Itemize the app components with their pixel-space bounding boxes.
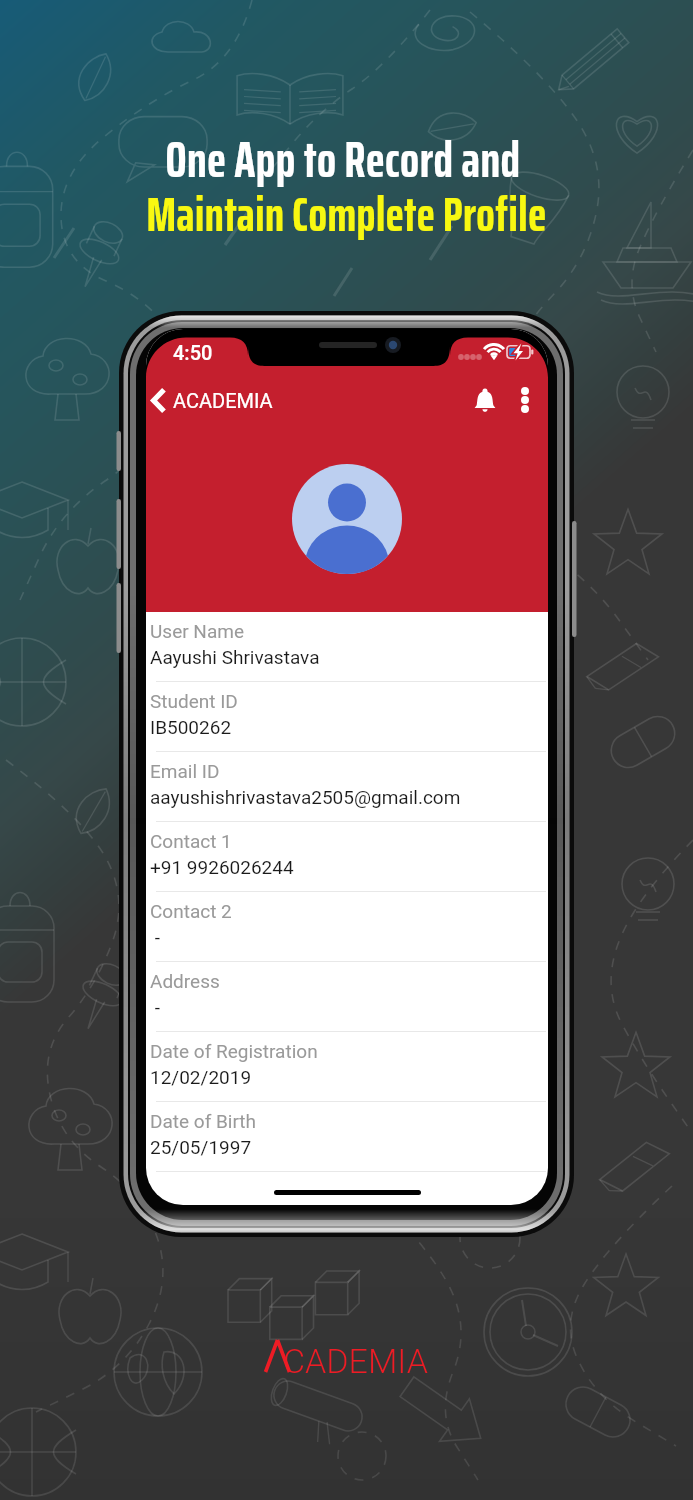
staticText: Contact 1 (150, 830, 232, 852)
staticText: Aayushi Shrivastava (150, 646, 320, 668)
staticText: - (150, 996, 160, 1018)
staticText: Contact 2 (150, 900, 232, 922)
button[interactable]: More options (508, 379, 542, 421)
button[interactable]: User Name (146, 612, 548, 682)
staticText: - (150, 926, 160, 948)
staticText: Address (150, 970, 220, 992)
staticText: User Name (150, 620, 244, 642)
staticText: ACADEMIA (173, 389, 273, 412)
staticText: IB500262 (150, 716, 232, 738)
button[interactable]: Notifications (464, 379, 506, 421)
staticText: Student ID (150, 690, 238, 712)
staticText: Date of Registration (150, 1040, 318, 1062)
staticText: Maintain Complete Profile (146, 176, 547, 252)
button[interactable]: Student ID (146, 682, 548, 752)
staticText: aayushishrivastava2505@gmail.com (150, 786, 461, 808)
staticText: Email ID (150, 760, 220, 782)
button[interactable]: Date of Registration (146, 1032, 548, 1102)
button[interactable]: CADEMIA (261, 1339, 441, 1383)
staticText: +91 9926026244 (150, 856, 294, 878)
staticText: CADEMIA (283, 1341, 428, 1381)
staticText: 25/05/1997 (150, 1136, 252, 1158)
button[interactable]: Contact 2 (146, 892, 548, 962)
button[interactable]: Contact 1 (146, 822, 548, 892)
staticText: 12/02/2019 (150, 1066, 252, 1088)
button[interactable]: Back (147, 379, 169, 421)
button[interactable]: Date of Birth (146, 1102, 548, 1172)
button[interactable]: Email ID (146, 752, 548, 822)
staticText: One App to Record and (165, 120, 521, 199)
staticText: 4:50 (173, 341, 213, 364)
staticText: Date of Birth (150, 1110, 257, 1132)
button[interactable]: Address (146, 962, 548, 1032)
